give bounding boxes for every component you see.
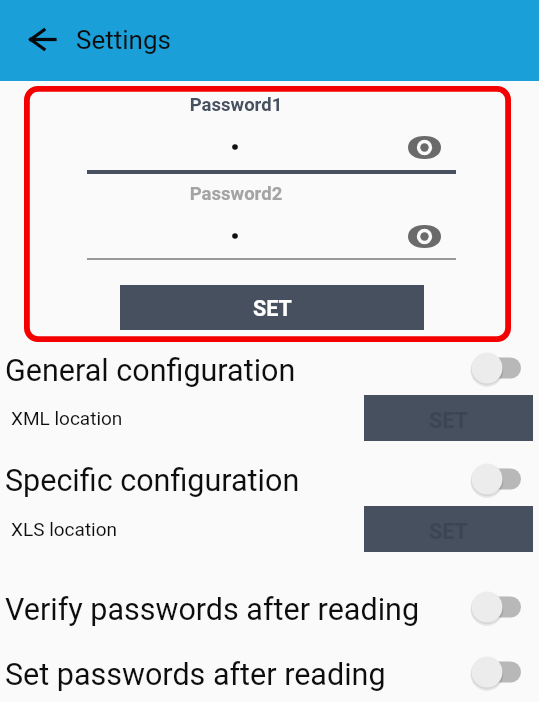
staticText: Verify passwords after reading xyxy=(5,592,420,628)
staticText: Password2 xyxy=(130,183,342,205)
button[interactable]: Toggle xyxy=(468,462,524,496)
staticText: SET xyxy=(429,519,468,544)
staticText: SET xyxy=(429,408,468,433)
button[interactable]: Show password xyxy=(402,128,446,166)
button[interactable]: Navigate up xyxy=(22,19,62,59)
staticText: SET xyxy=(253,296,292,321)
staticText: Password1 xyxy=(130,94,342,116)
button[interactable]: Toggle xyxy=(468,655,524,689)
button[interactable]: Verify passwords after reading xyxy=(0,582,539,632)
button[interactable]: Specific configuration xyxy=(0,454,539,504)
staticText: Specific configuration xyxy=(5,463,300,499)
button[interactable]: SET xyxy=(120,285,424,330)
staticText: Settings xyxy=(76,25,171,55)
staticText: General configuration xyxy=(5,353,296,389)
button[interactable]: Toggle xyxy=(468,590,524,624)
button[interactable]: Toggle xyxy=(468,351,524,385)
staticText: XML location xyxy=(11,407,123,429)
button[interactable]: Set passwords after reading xyxy=(0,647,539,697)
staticText: Set passwords after reading xyxy=(5,657,386,693)
button[interactable]: General configuration xyxy=(0,343,539,393)
button[interactable]: Show password xyxy=(402,217,446,255)
staticText: XLS location xyxy=(11,518,118,540)
